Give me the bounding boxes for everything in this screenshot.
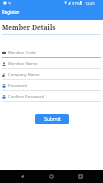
button[interactable]: Password — [2, 82, 101, 93]
staticText: Register — [2, 9, 20, 15]
staticText: Submit — [44, 116, 61, 123]
button[interactable]: Member Name — [2, 60, 101, 71]
button[interactable]: Back — [18, 172, 27, 181]
button[interactable]: Recents — [76, 172, 85, 181]
button[interactable]: Submit — [35, 114, 69, 124]
staticText: Confirm Password — [8, 94, 44, 100]
staticText: 97% — [72, 1, 80, 6]
staticText: 12:21 — [85, 1, 95, 6]
button[interactable]: Company Name — [2, 71, 101, 82]
staticText: Password — [8, 83, 27, 89]
staticText: Member Code — [8, 50, 36, 56]
staticText: Company Name — [8, 72, 40, 78]
staticText: Member Name — [8, 61, 38, 67]
button[interactable]: Home — [47, 172, 56, 181]
button[interactable]: Member Code — [2, 49, 101, 60]
staticText: Member Details — [2, 23, 56, 32]
button[interactable]: Confirm Password — [2, 93, 101, 104]
